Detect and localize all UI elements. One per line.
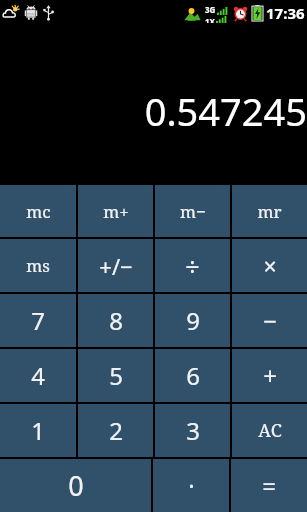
- button[interactable]: 7: [0, 294, 76, 347]
- button[interactable]: 0: [0, 459, 151, 512]
- button[interactable]: 8: [78, 294, 153, 347]
- staticText: 4: [31, 359, 45, 392]
- staticText: ms: [26, 254, 50, 277]
- button[interactable]: ms: [0, 239, 76, 292]
- button[interactable]: ·: [153, 459, 229, 512]
- staticText: 3: [186, 414, 200, 447]
- staticText: ÷: [185, 249, 200, 283]
- staticText: 2: [109, 414, 123, 447]
- staticText: =: [262, 469, 276, 502]
- staticText: 17:36: [266, 3, 305, 23]
- button[interactable]: +: [232, 349, 307, 402]
- button[interactable]: m+: [78, 185, 153, 237]
- button[interactable]: mc: [0, 185, 76, 237]
- staticText: 9: [186, 304, 200, 337]
- staticText: ×: [263, 250, 277, 281]
- button[interactable]: AC: [232, 404, 307, 457]
- button[interactable]: =: [231, 459, 307, 512]
- staticText: 7: [31, 304, 45, 337]
- staticText: ·: [188, 469, 195, 502]
- staticText: mr: [257, 200, 282, 223]
- staticText: 6: [186, 359, 200, 392]
- button[interactable]: 6: [155, 349, 230, 402]
- staticText: +/−: [99, 251, 133, 281]
- staticText: AC: [258, 418, 282, 443]
- staticText: 8: [109, 304, 123, 337]
- button[interactable]: +/−: [78, 239, 153, 292]
- button[interactable]: 5: [78, 349, 153, 402]
- button[interactable]: 2: [78, 404, 153, 457]
- staticText: −: [263, 304, 277, 337]
- staticText: mc: [26, 200, 51, 223]
- button[interactable]: m−: [155, 185, 230, 237]
- button[interactable]: ×: [232, 239, 307, 292]
- button[interactable]: 3: [155, 404, 230, 457]
- button[interactable]: ÷: [155, 239, 230, 292]
- button[interactable]: 9: [155, 294, 230, 347]
- button[interactable]: 4: [0, 349, 76, 402]
- staticText: 1: [31, 414, 45, 447]
- staticText: 0: [68, 467, 84, 504]
- staticText: 3G: [205, 4, 216, 15]
- staticText: 1X: [205, 16, 215, 23]
- staticText: 5: [109, 359, 123, 392]
- staticText: +: [263, 359, 277, 392]
- staticText: m+: [103, 200, 129, 223]
- button[interactable]: 1: [0, 404, 76, 457]
- button[interactable]: mr: [232, 185, 307, 237]
- button[interactable]: −: [232, 294, 307, 347]
- staticText: m−: [180, 200, 206, 223]
- staticText: 0.547245: [144, 85, 307, 137]
